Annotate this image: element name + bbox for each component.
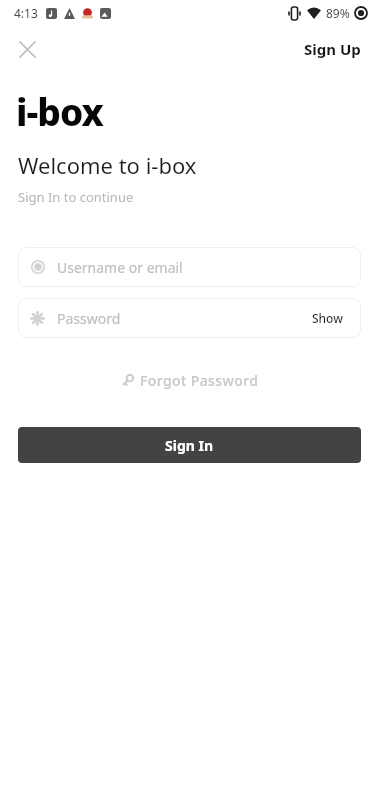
staticText: Sign In (165, 436, 214, 455)
staticText: Password (57, 309, 308, 328)
button[interactable]: Show (308, 304, 347, 332)
button[interactable]: Sign Up (286, 29, 379, 69)
staticText: Welcome to i-box (18, 150, 197, 180)
staticText: 4:13 (14, 5, 38, 21)
staticText: Sign Up (304, 39, 361, 59)
button[interactable]: Sign In (18, 427, 361, 463)
staticText: Username or email (57, 258, 183, 277)
button[interactable]: Username or email (18, 247, 361, 287)
button[interactable]: Close (6, 28, 48, 70)
button[interactable]: Password (18, 298, 361, 338)
staticText: 89% (326, 5, 350, 21)
button[interactable]: Forgot Password (111, 365, 269, 396)
staticText: Sign In to continue (18, 188, 134, 206)
staticText: Forgot Password (140, 371, 259, 390)
staticText: Show (312, 310, 343, 326)
staticText: i-box (16, 86, 103, 136)
